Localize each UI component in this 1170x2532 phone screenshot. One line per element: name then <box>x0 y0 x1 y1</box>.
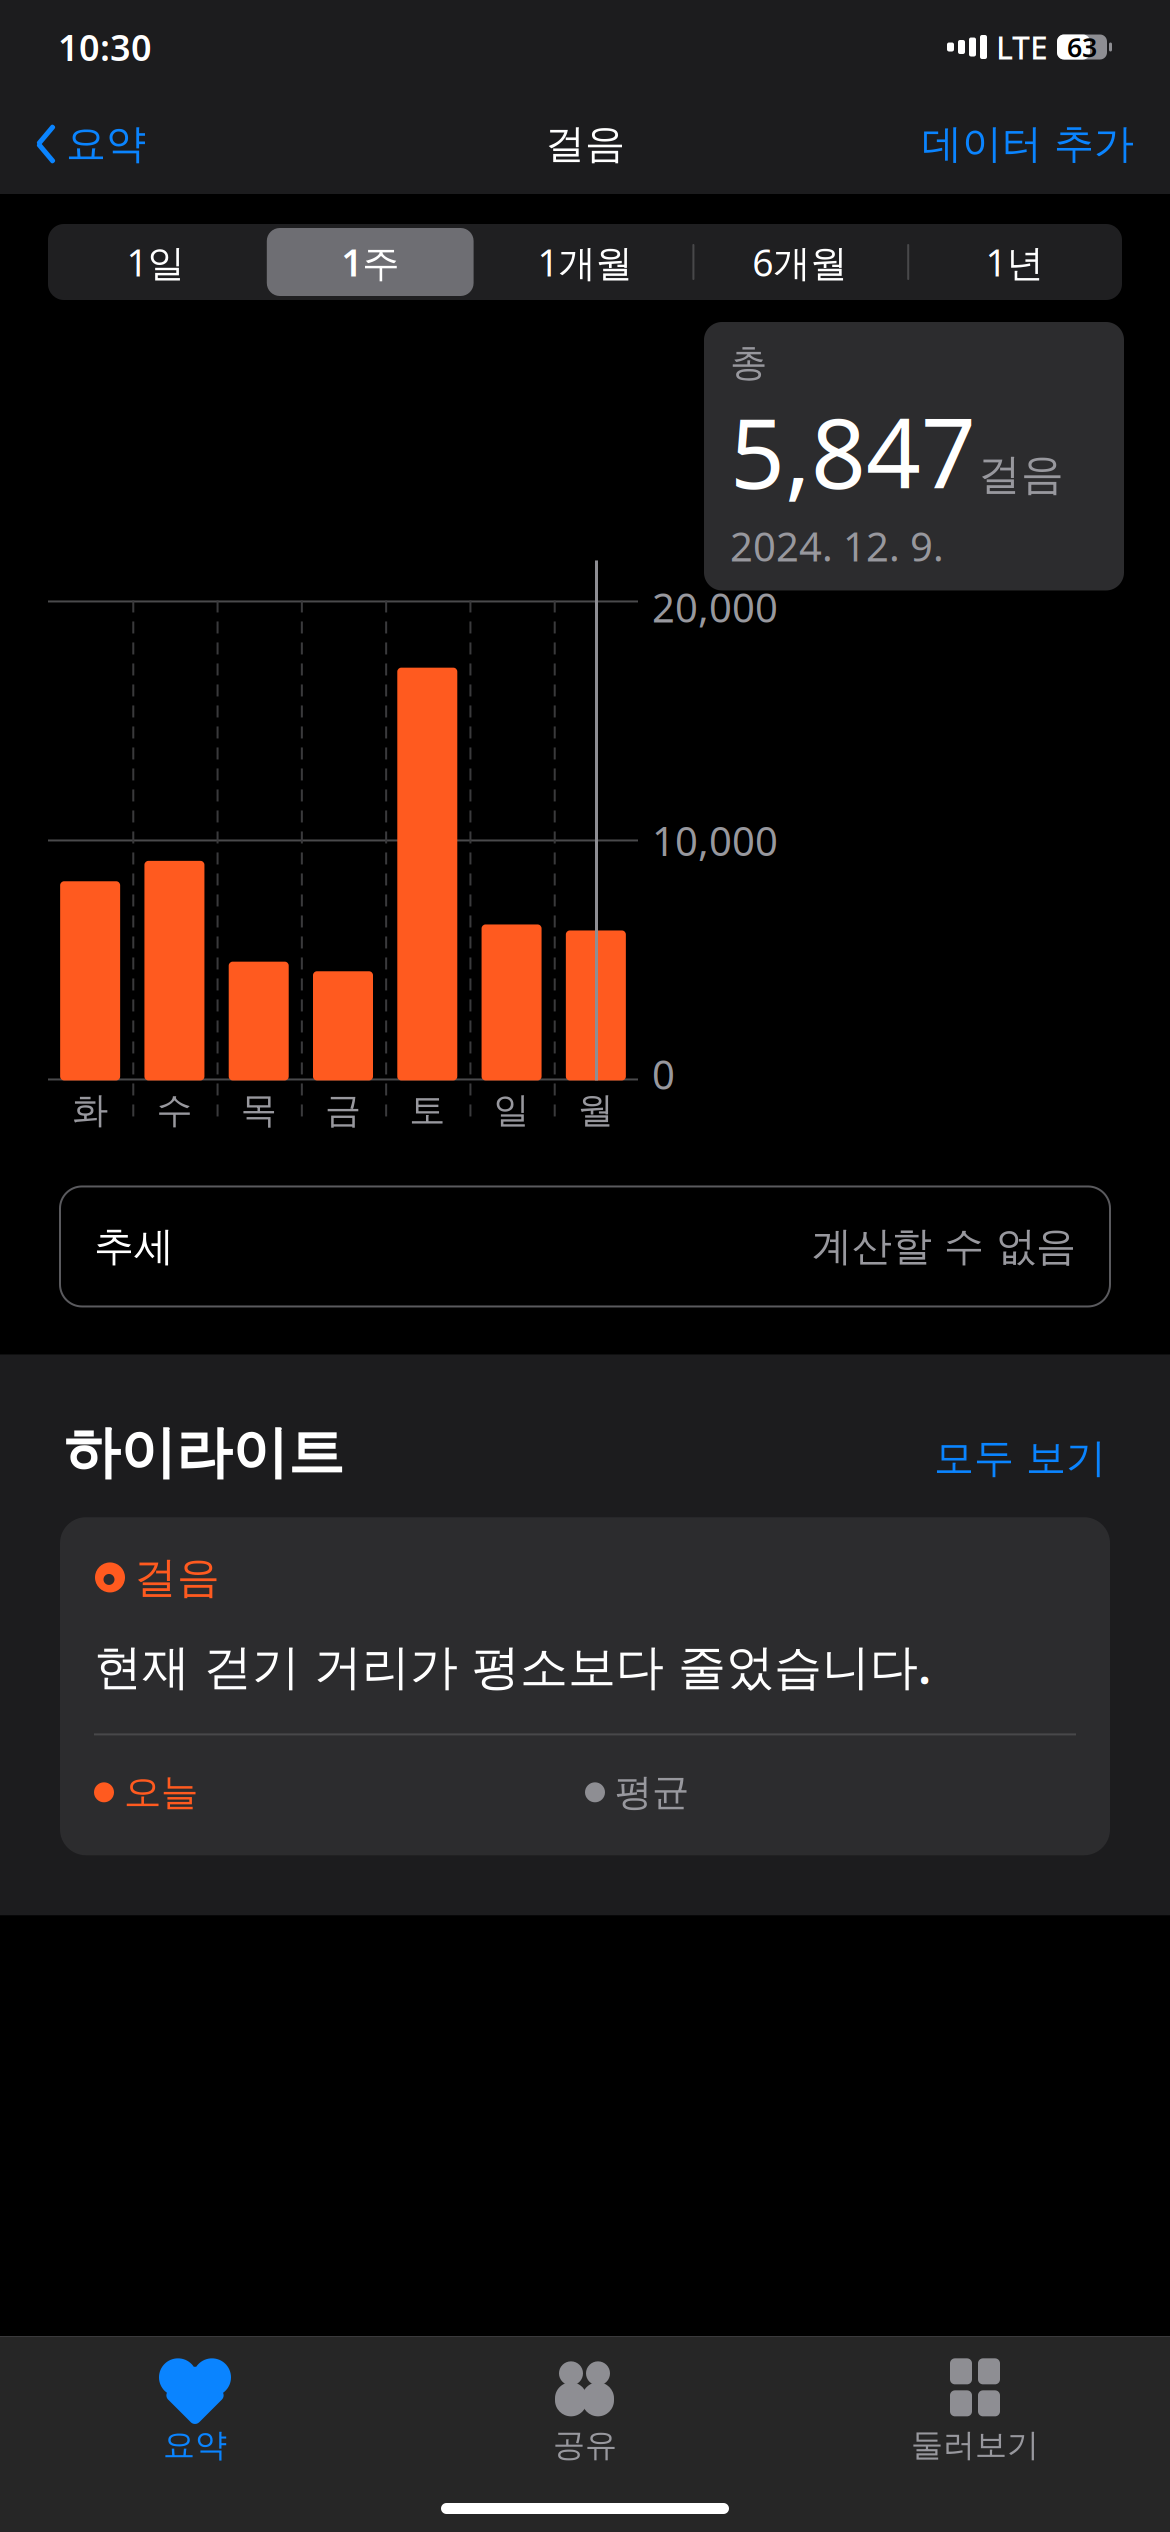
staticText: 금 <box>325 1088 361 1132</box>
staticText: 2024. 12. 9. <box>730 519 944 572</box>
staticText: 1주 <box>341 237 399 287</box>
staticText: 오늘 <box>124 1769 198 1815</box>
staticText: 추세 <box>94 1222 174 1271</box>
staticText: 화 <box>72 1088 108 1132</box>
staticText: 요약 <box>66 119 146 168</box>
staticText: 10:30 <box>58 23 152 71</box>
staticText: LTE <box>996 26 1048 68</box>
button[interactable]: 데이터 추가 <box>898 108 1158 180</box>
staticText: 월 <box>578 1088 614 1132</box>
staticText: 1일 <box>126 237 184 287</box>
staticText: 데이터 추가 <box>922 119 1134 168</box>
button[interactable]: 1주 <box>263 224 478 300</box>
staticText: 목 <box>241 1088 277 1132</box>
staticText: 1개월 <box>537 237 632 287</box>
button[interactable]: 요약 <box>0 2337 390 2487</box>
button[interactable]: 추세 <box>60 1186 1110 1306</box>
staticText: 수 <box>156 1088 192 1132</box>
staticText: 63 <box>1067 29 1097 65</box>
staticText: 계산할 수 없음 <box>812 1222 1076 1271</box>
staticText: 총 <box>730 340 767 386</box>
button[interactable]: 모두 보기 <box>934 1434 1106 1483</box>
button[interactable]: 요약 <box>12 108 170 180</box>
button[interactable]: 둘러보기 <box>780 2337 1170 2487</box>
button[interactable]: 1년 <box>907 224 1122 300</box>
staticText: 6개월 <box>752 237 847 287</box>
staticText: 모두 보기 <box>934 1434 1106 1483</box>
staticText: 평균 <box>615 1769 689 1815</box>
staticText: 20,000 <box>652 580 778 634</box>
button[interactable]: 1일 <box>48 224 263 300</box>
staticText: 걸음 <box>134 1551 220 1604</box>
staticText: 현재 걷기 거리가 평소보다 줄었습니다. <box>94 1634 931 1697</box>
staticText: 일 <box>494 1088 530 1132</box>
staticText: 요약 <box>163 2425 227 2465</box>
staticText: 걸음 <box>978 448 1064 501</box>
button[interactable]: 1개월 <box>478 224 692 300</box>
staticText: 둘러보기 <box>911 2425 1039 2465</box>
staticText: 5,847 <box>730 388 976 515</box>
staticText: 걸음 <box>545 119 625 168</box>
staticText: 10,000 <box>652 814 778 867</box>
staticText: 1년 <box>986 237 1044 287</box>
button[interactable]: 6개월 <box>692 224 907 300</box>
staticText: 공유 <box>553 2425 617 2465</box>
staticText: 토 <box>409 1088 445 1132</box>
staticText: 하이라이트 <box>64 1418 344 1487</box>
button[interactable]: 공유 <box>390 2337 780 2487</box>
staticText: 0 <box>652 1047 675 1100</box>
button[interactable]: 걸음 <box>60 1517 1110 1855</box>
